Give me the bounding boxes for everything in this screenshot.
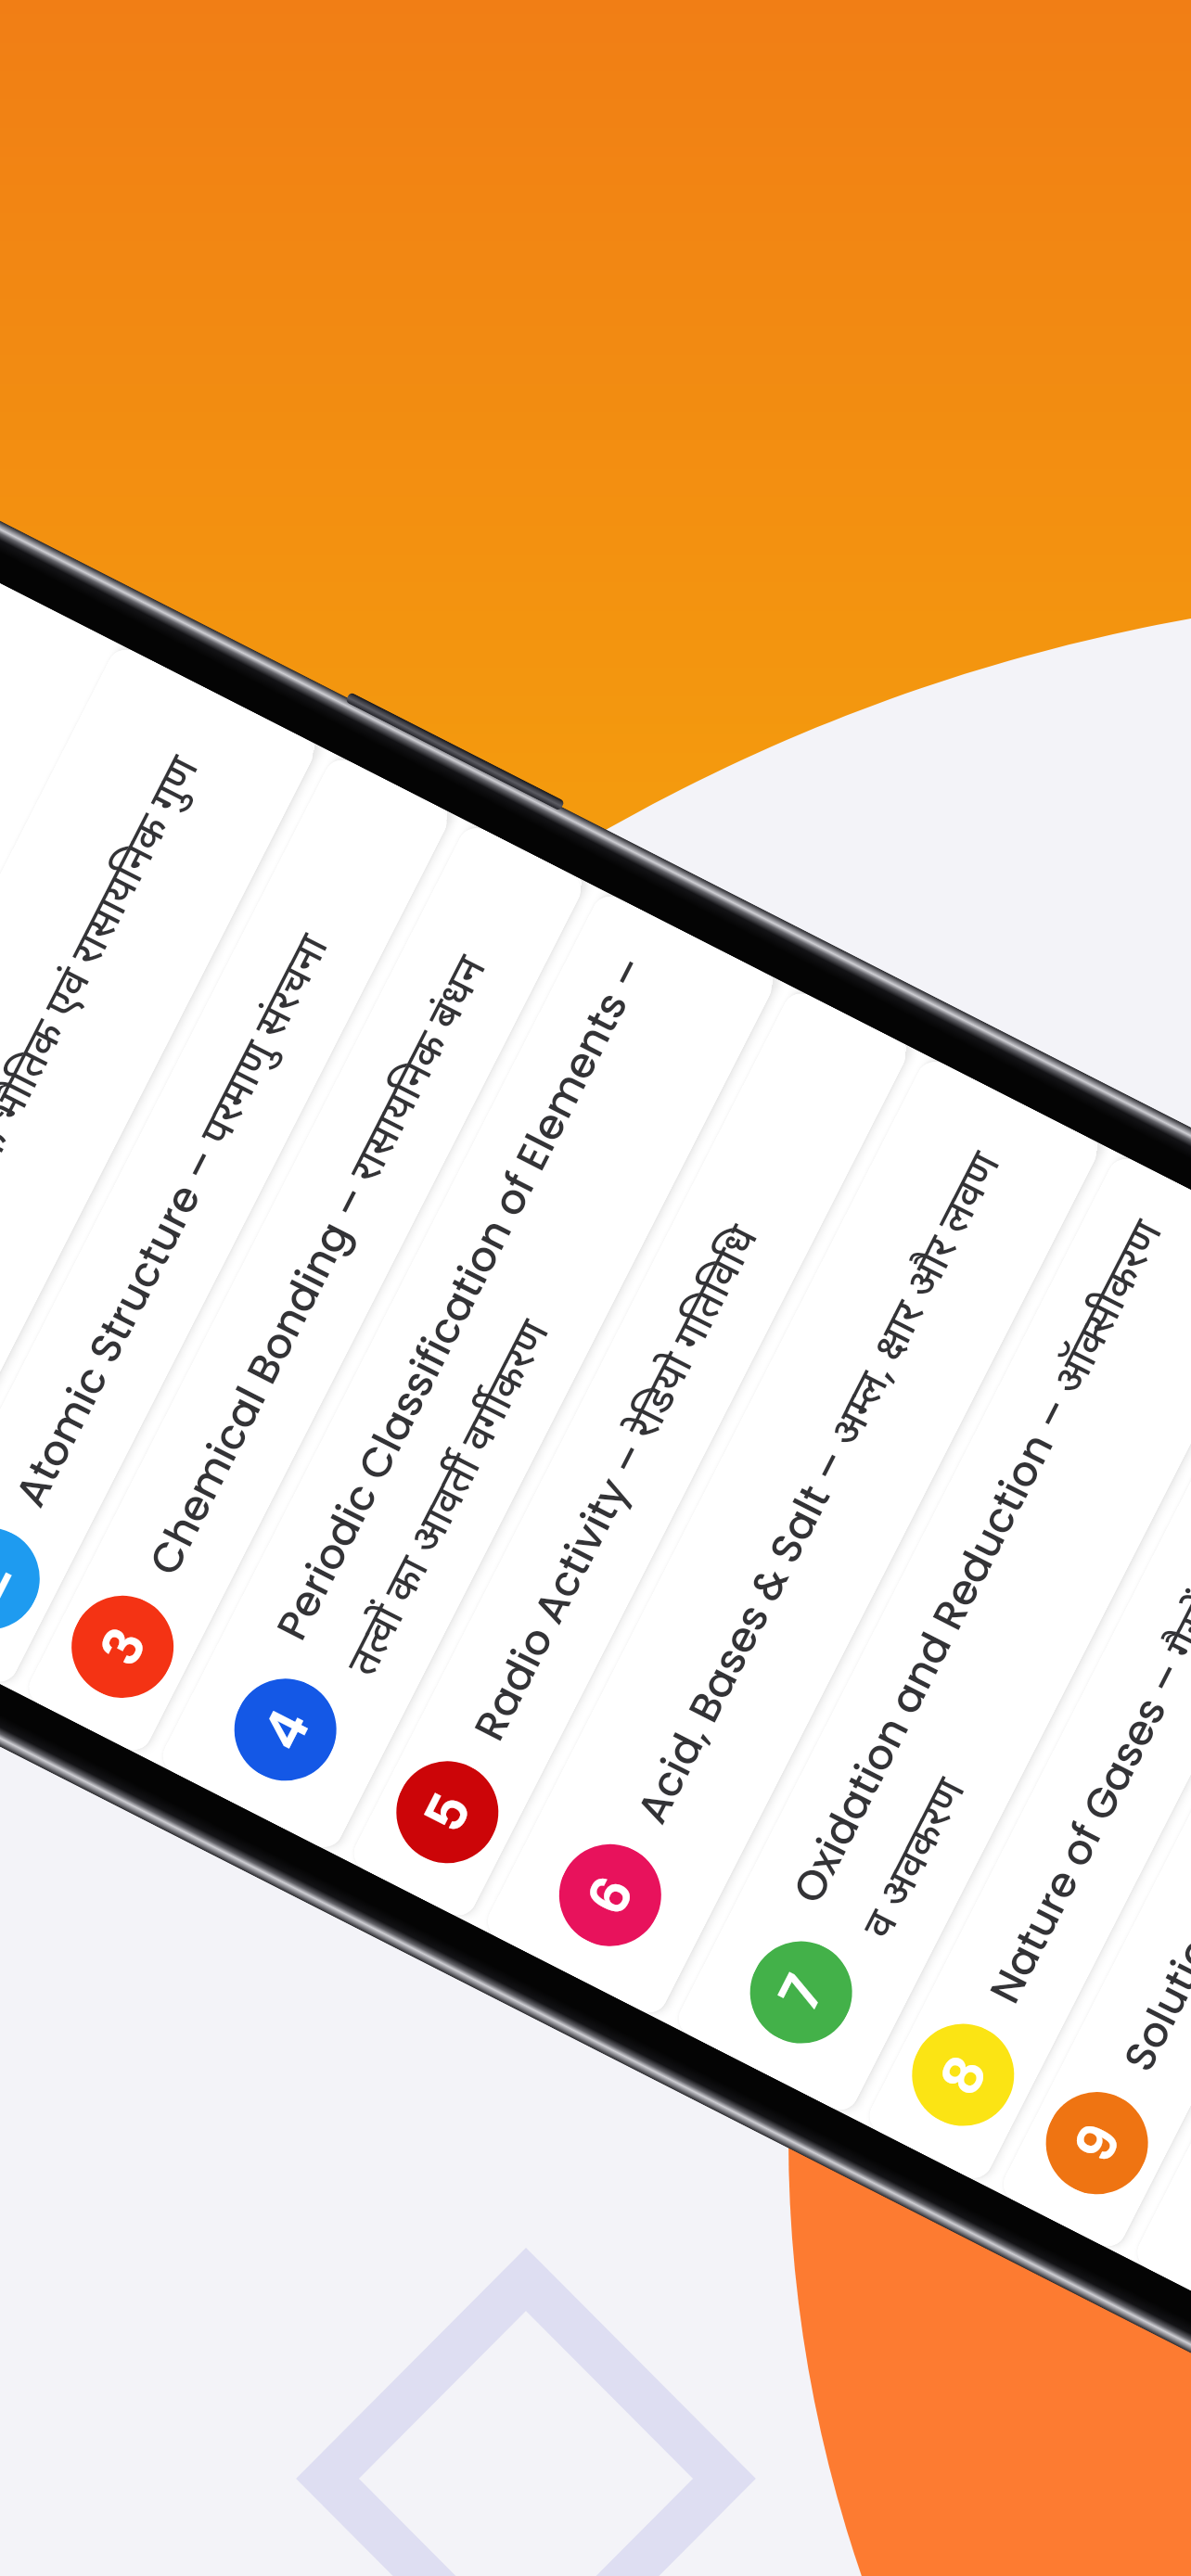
staticText: Acid, Bases & Salt – अम्ल, क्षार और लवण — [622, 1141, 1014, 1833]
staticText: 6 — [569, 1863, 652, 1928]
button[interactable]: 7 — [672, 1153, 1191, 2116]
button[interactable]: 3 — [23, 822, 587, 1756]
button[interactable]: 6 — [481, 1055, 1103, 2019]
staticText: Oxidation and Reduction – ऑक्सीकरण व अवक… — [778, 1188, 1191, 1948]
button[interactable]: 4 — [156, 890, 778, 1854]
staticText: 5 — [406, 1780, 489, 1845]
staticText: Periodic Classification of Elements – तत… — [263, 925, 741, 1686]
button[interactable]: 2 — [0, 753, 453, 1688]
staticText: 3 — [82, 1615, 164, 1678]
staticText: 8 — [922, 2042, 1005, 2108]
staticText: Radio Activity – रेडियो गतिविधि — [459, 1215, 772, 1750]
button[interactable]: 8 — [863, 1250, 1191, 2184]
staticText: 9 — [1056, 2111, 1139, 2175]
button[interactable]: 10 — [1131, 1386, 1191, 2350]
staticText: Matter – पदार्थ के भौतिक एवं रासायनिक गु… — [0, 745, 212, 1428]
staticText: 7 — [761, 1962, 842, 2023]
staticText: Chemical Bonding – रासायनिक बंधन — [134, 945, 500, 1585]
staticText: 2 — [0, 1548, 30, 1610]
button[interactable]: 5 — [347, 987, 912, 1922]
button[interactable]: 9 — [997, 1318, 1191, 2253]
button[interactable]: 1 — [0, 643, 319, 1620]
staticText: Atomic Structure – परमाणु संरचना — [1, 924, 342, 1517]
staticText: Solution – विलयन — [1109, 1756, 1191, 2081]
staticText: Nature of Gases – गैसों की प्रकृति — [975, 1443, 1191, 2013]
staticText: 4 — [244, 1696, 328, 1763]
